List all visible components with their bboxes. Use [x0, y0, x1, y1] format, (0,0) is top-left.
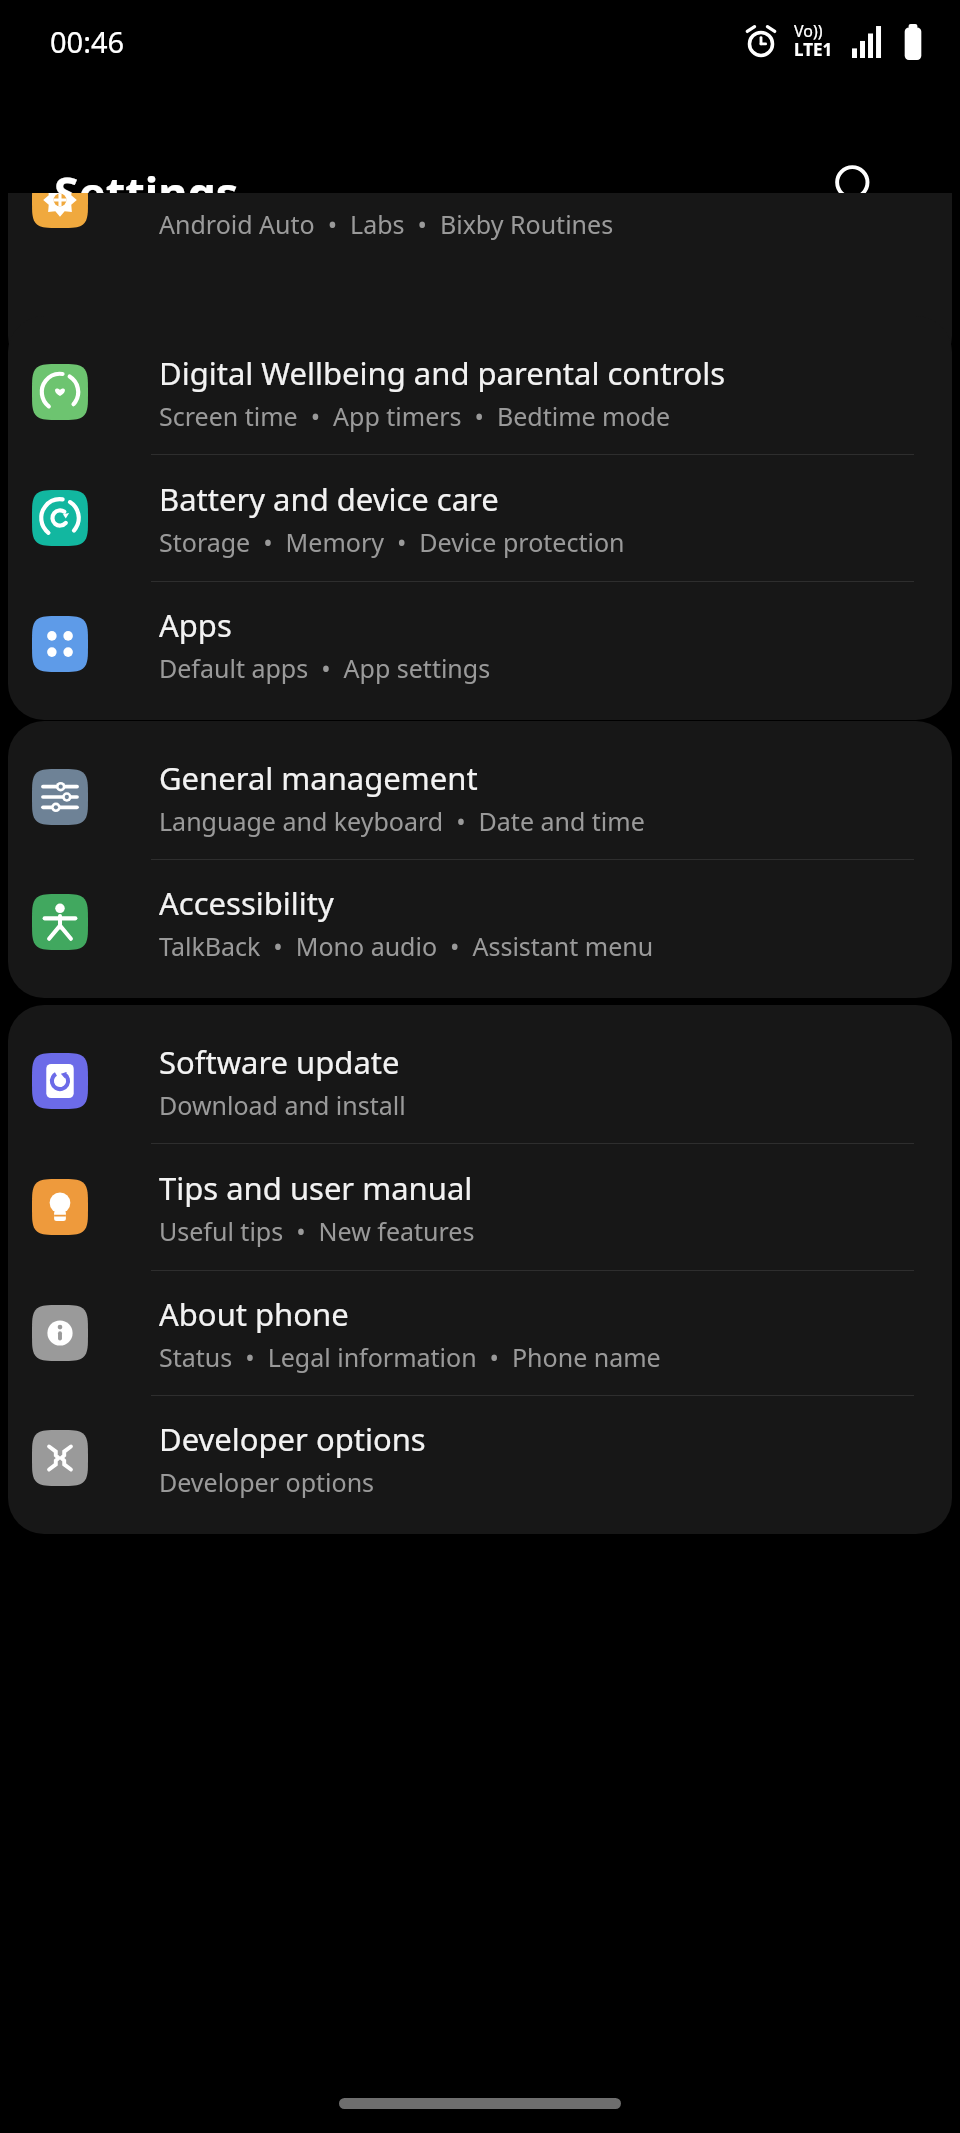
button[interactable]: Digital Wellbeing and parental controls [8, 330, 952, 454]
staticText: Digital Wellbeing and parental controls [159, 352, 726, 394]
button[interactable]: Battery and device care [8, 455, 952, 581]
button[interactable]: Developer options [8, 1396, 952, 1520]
staticText: Settings [54, 162, 239, 223]
button[interactable]: Tips and user manual [8, 1144, 952, 1270]
staticText: Developer options [159, 1465, 375, 1499]
button[interactable]: Apps [8, 582, 952, 706]
staticText: Battery and device care [159, 478, 499, 520]
staticText: Developer options [159, 1418, 426, 1460]
staticText: Storage • Memory • Device protection [159, 525, 625, 559]
staticText: Download and install [159, 1088, 406, 1122]
staticText: Status • Legal information • Phone name [159, 1340, 661, 1374]
button[interactable]: Software update [8, 1019, 952, 1143]
staticText: Useful tips • New features [159, 1214, 475, 1248]
staticText: Apps [159, 604, 232, 646]
button[interactable]: General management [8, 735, 952, 859]
staticText: Tips and user manual [159, 1167, 473, 1209]
staticText: Vo)) [794, 20, 823, 42]
staticText: Language and keyboard • Date and time [159, 804, 645, 838]
staticText: LTE1 [794, 38, 833, 61]
button[interactable]: Advanced features [8, 193, 952, 275]
staticText: 00:46 [50, 22, 125, 61]
staticText: About phone [159, 1293, 349, 1335]
staticText: Accessibility [159, 882, 334, 924]
staticText: TalkBack • Mono audio • Assistant menu [159, 929, 654, 963]
staticText: Software update [159, 1041, 400, 1083]
staticText: Screen time • App timers • Bedtime mode [159, 399, 671, 433]
button[interactable]: Search [818, 148, 894, 224]
button[interactable]: Accessibility [8, 860, 952, 984]
button[interactable]: About phone [8, 1271, 952, 1395]
staticText: General management [159, 757, 478, 799]
staticText: Android Auto • Labs • Bixby Routines [159, 207, 614, 241]
staticText: Default apps • App settings [159, 651, 491, 685]
